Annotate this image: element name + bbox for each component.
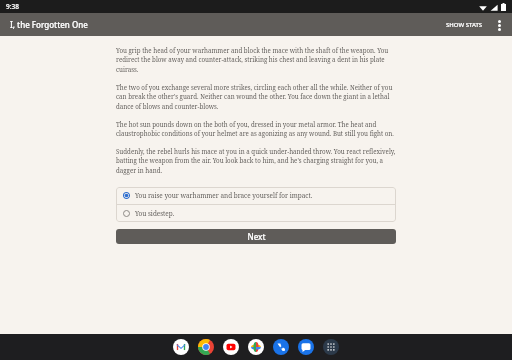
button[interactable]: SHOW STATS (440, 16, 489, 34)
button[interactable]: All apps (323, 339, 339, 355)
button[interactable]: Photos (248, 339, 264, 355)
button[interactable]: YouTube (223, 339, 239, 355)
staticText: The two of you exchange several more str… (116, 83, 396, 111)
staticText: 9:38 (6, 2, 19, 11)
staticText: I, the Forgotten One (10, 19, 88, 30)
button[interactable]: More options (489, 15, 509, 35)
button[interactable]: Next (116, 229, 396, 244)
button[interactable]: Gmail (173, 339, 189, 355)
button[interactable]: You raise your warhammer and brace yours… (116, 187, 396, 204)
staticText: You grip the head of your warhammer and … (116, 46, 396, 74)
staticText: You sidestep. (135, 209, 175, 218)
button[interactable]: You sidestep. (116, 205, 396, 222)
button[interactable]: Phone (273, 339, 289, 355)
button[interactable]: Messages (298, 339, 314, 355)
staticText: Suddenly, the rebel hurls his mace at yo… (116, 147, 396, 175)
staticText: The hot sun pounds down on the both of y… (116, 120, 396, 138)
staticText: You raise your warhammer and brace yours… (135, 191, 313, 200)
button[interactable]: Chrome (198, 339, 214, 355)
staticText: SHOW STATS (446, 21, 483, 29)
staticText: Next (247, 231, 266, 242)
